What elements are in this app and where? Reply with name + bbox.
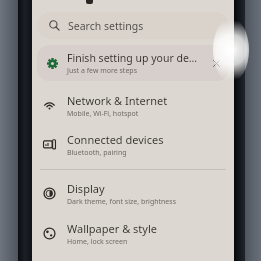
- staticText: Display: [67, 181, 105, 196]
- button[interactable]: Wallpaper & style: [32, 217, 234, 250]
- staticText: Just a few more steps: [67, 66, 138, 76]
- staticText: Finish setting up your de…: [67, 51, 198, 65]
- staticText: Search settings: [68, 19, 144, 33]
- staticText: Connected devices: [67, 132, 164, 147]
- button[interactable]: Display: [32, 177, 234, 210]
- button[interactable]: Finish setting up your de…: [37, 45, 229, 81]
- staticText: Home, lock screen: [67, 237, 128, 247]
- staticText: Mobile, Wi-Fi, hotspot: [67, 109, 139, 119]
- staticText: Bluetooth, pairing: [67, 148, 127, 158]
- staticText: Dark theme, font size, brightness: [67, 197, 177, 207]
- staticText: Network & Internet: [67, 93, 168, 108]
- button[interactable]: Network & Internet: [32, 89, 234, 122]
- button[interactable]: Search settings: [37, 12, 229, 39]
- button[interactable]: Dismiss: [203, 45, 229, 81]
- button[interactable]: Connected devices: [32, 128, 234, 161]
- staticText: Wallpaper & style: [67, 221, 157, 236]
